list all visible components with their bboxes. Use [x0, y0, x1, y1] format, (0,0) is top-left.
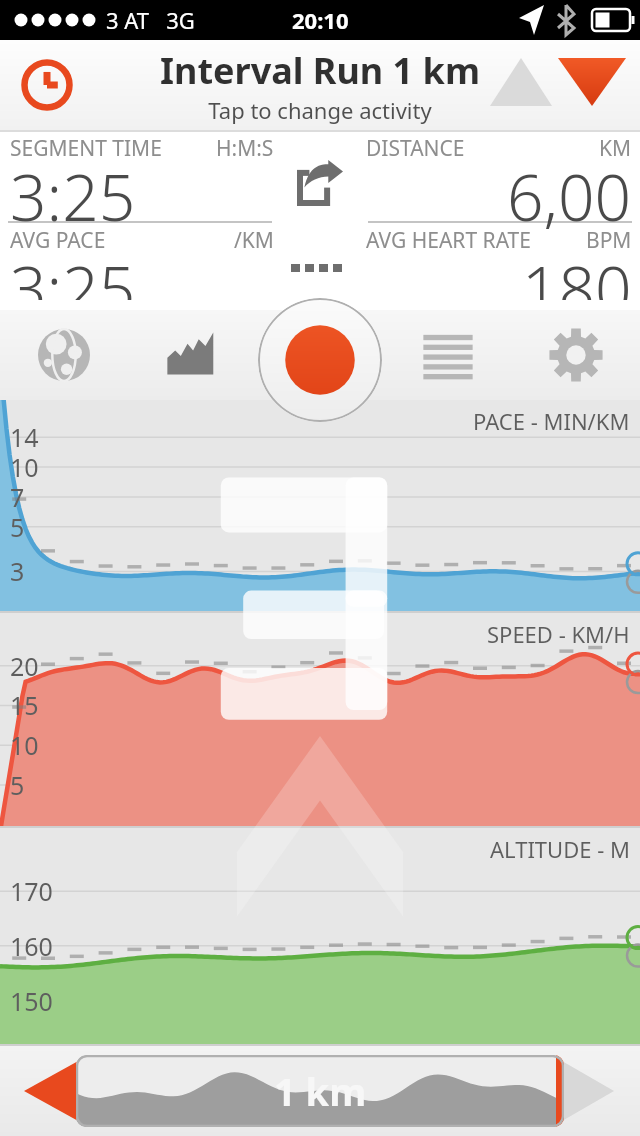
staticText: 180 [522, 245, 632, 300]
button[interactable]: Laps [384, 310, 512, 400]
staticText: 3 AT 3G [106, 5, 195, 35]
button[interactable]: Settings [512, 310, 640, 400]
staticText: BPM [586, 226, 632, 255]
button[interactable]: Previous lap [14, 1056, 90, 1126]
staticText: H:M:S [216, 134, 274, 163]
staticText: 5 [10, 510, 25, 544]
staticText: 1 km [274, 1065, 367, 1117]
button[interactable]: Map [0, 310, 128, 400]
staticText: 3:25 [10, 245, 136, 300]
staticText: 3 [10, 554, 25, 588]
staticText: 14 [10, 420, 39, 454]
staticText: 20 [10, 649, 39, 683]
button[interactable]: Next lap [550, 1056, 626, 1126]
button[interactable]: Next [558, 56, 626, 106]
button[interactable]: History [12, 50, 82, 120]
button[interactable]: Previous [490, 56, 552, 106]
staticText: 6,00 [507, 153, 632, 240]
staticText: 10 [10, 450, 39, 484]
button[interactable]: Record [258, 298, 382, 422]
button[interactable]: PACE - MIN/KM [0, 400, 640, 613]
button[interactable]: 1 km [76, 1055, 564, 1127]
staticText: KM [599, 134, 632, 163]
button[interactable]: Interval Run 1 km [0, 46, 640, 125]
staticText: 7 [10, 480, 25, 514]
staticText: Interval Run 1 km [160, 46, 480, 95]
staticText: ALTITUDE - M [490, 834, 630, 864]
button[interactable]: ALTITUDE - M [0, 828, 640, 1046]
button[interactable]: Charts [128, 310, 256, 400]
button[interactable]: SEGMENT TIME [10, 134, 274, 250]
button[interactable]: AVG HEART RATE [366, 226, 632, 310]
staticText: 170 [10, 874, 53, 908]
staticText: 3:25 [10, 153, 136, 240]
staticText: 160 [10, 929, 53, 963]
staticText: 15 [10, 688, 39, 722]
button[interactable]: Share [289, 152, 351, 214]
staticText: SPEED - KM/H [487, 619, 630, 649]
staticText: /KM [234, 226, 274, 255]
staticText: SEGMENT TIME [10, 134, 162, 163]
staticText: AVG PACE [10, 226, 106, 255]
button[interactable]: DISTANCE [366, 134, 632, 250]
button[interactable]: AVG PACE [10, 226, 274, 310]
staticText: 20:10 [292, 5, 349, 35]
staticText: 150 [10, 984, 53, 1018]
staticText: 5 [10, 768, 25, 802]
staticText: Tap to change activity [208, 95, 432, 125]
staticText: AVG HEART RATE [366, 226, 531, 255]
staticText: PACE - MIN/KM [473, 406, 630, 436]
staticText: 10 [10, 728, 39, 762]
button[interactable]: SPEED - KM/H [0, 613, 640, 828]
staticText: DISTANCE [366, 134, 465, 163]
